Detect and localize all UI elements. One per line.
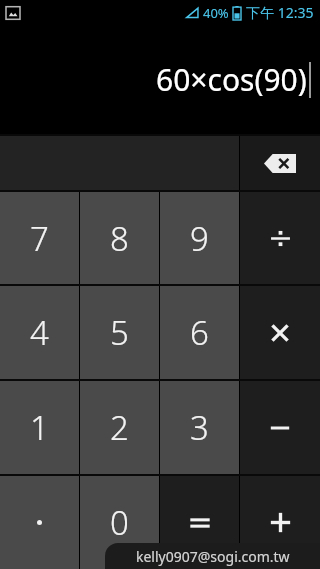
button[interactable]: Equals bbox=[160, 476, 239, 569]
staticText: 8 bbox=[110, 216, 129, 261]
staticText: 9 bbox=[190, 216, 209, 261]
button[interactable]: Divide bbox=[240, 192, 320, 284]
staticText: 40% bbox=[203, 4, 229, 22]
staticText: 0 bbox=[110, 500, 129, 545]
staticText: 2 bbox=[110, 405, 129, 450]
button[interactable]: 3 bbox=[160, 381, 239, 474]
button[interactable]: 0 bbox=[80, 476, 159, 569]
button[interactable]: Subtract bbox=[240, 381, 320, 474]
staticText: 1 bbox=[30, 405, 49, 450]
button[interactable]: Backspace bbox=[240, 136, 320, 190]
button[interactable]: 9 bbox=[160, 192, 239, 284]
button[interactable]: 6 bbox=[160, 286, 239, 379]
button[interactable]: Decimal point bbox=[0, 476, 79, 569]
button[interactable]: Multiply bbox=[240, 286, 320, 379]
button[interactable]: 1 bbox=[0, 381, 79, 474]
button[interactable]: Add bbox=[240, 476, 320, 569]
staticText: 4 bbox=[30, 310, 49, 355]
staticText: 7 bbox=[30, 216, 49, 261]
staticText: 5 bbox=[110, 310, 129, 355]
button[interactable]: 2 bbox=[80, 381, 159, 474]
staticText: 下午 12:35 bbox=[246, 3, 314, 22]
button[interactable]: 4 bbox=[0, 286, 79, 379]
staticText: 3 bbox=[190, 405, 209, 450]
staticText: kelly0907@sogi.com.tw bbox=[136, 547, 290, 566]
button[interactable]: 8 bbox=[80, 192, 159, 284]
staticText: 60×cos(90) bbox=[156, 59, 307, 100]
button[interactable]: 7 bbox=[0, 192, 79, 284]
staticText: 6 bbox=[190, 310, 209, 355]
button[interactable]: 5 bbox=[80, 286, 159, 379]
